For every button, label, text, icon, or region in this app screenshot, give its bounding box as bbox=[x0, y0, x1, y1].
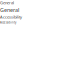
staticText: Accessibility bbox=[0, 21, 16, 24]
staticText: Accessibility bbox=[0, 14, 22, 20]
staticText: General bbox=[0, 0, 14, 5]
staticText: General bbox=[0, 6, 19, 13]
